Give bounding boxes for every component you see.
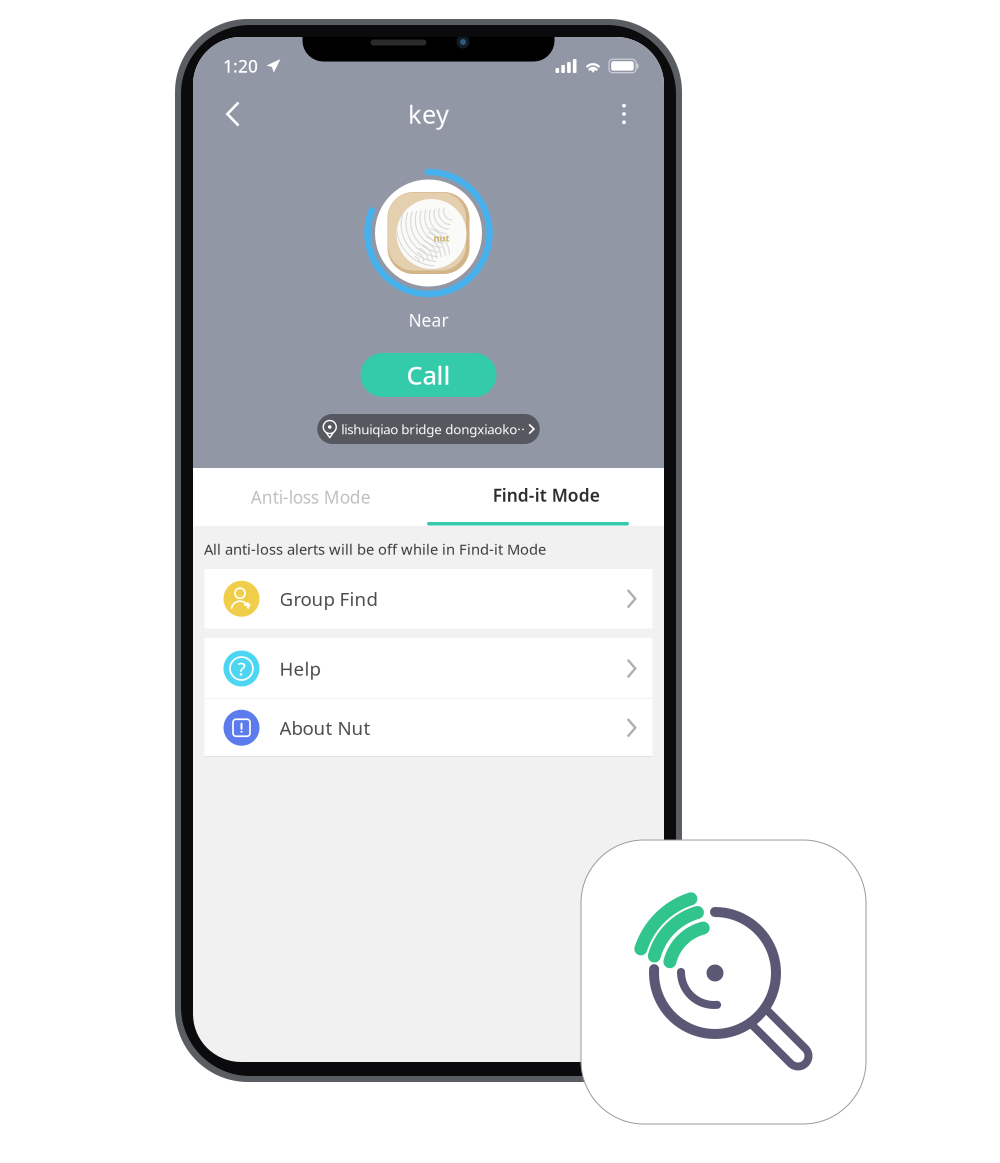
staticText: Help <box>279 656 320 681</box>
button[interactable]: Back <box>210 91 256 137</box>
staticText: Anti-loss Mode <box>251 485 371 508</box>
staticText: Call <box>406 358 450 392</box>
button[interactable]: More options <box>601 91 647 137</box>
staticText: ? <box>237 656 245 681</box>
button[interactable]: Call <box>360 353 496 397</box>
staticText: nut <box>433 232 449 244</box>
button[interactable]: ? <box>204 638 652 699</box>
button[interactable]: Find-it Mode <box>428 468 664 526</box>
staticText: lishuiqiao bridge dongxiaoko·· <box>341 420 525 438</box>
staticText: 1:20 <box>223 54 258 77</box>
staticText: About Nut <box>279 715 370 740</box>
staticText: key <box>408 97 449 131</box>
button[interactable]: Group Find <box>204 569 652 628</box>
staticText: Group Find <box>279 586 377 611</box>
button[interactable]: lishuiqiao bridge dongxiaoko·· <box>317 414 540 444</box>
staticText: Find-it Mode <box>493 483 600 506</box>
button[interactable]: About Nut <box>204 699 652 756</box>
staticText: Near <box>408 308 448 331</box>
staticText: All anti-loss alerts will be off while i… <box>204 539 546 559</box>
button[interactable]: Anti-loss Mode <box>193 468 428 526</box>
